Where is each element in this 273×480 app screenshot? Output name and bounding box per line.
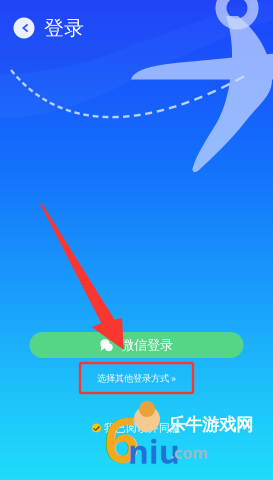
staticText: 登录 — [44, 16, 84, 40]
staticText: 微信登录 — [121, 337, 173, 353]
button[interactable]: 选择其他登录方式 » — [80, 363, 193, 393]
staticText: 我已阅读并同意 — [104, 421, 181, 434]
staticText: 6 — [104, 398, 139, 479]
staticText: .com — [170, 442, 208, 463]
button[interactable]: 我已阅读并同意 — [92, 421, 181, 435]
staticText: 选择其他登录方式 » — [97, 372, 176, 384]
button[interactable]: 微信登录 — [29, 332, 243, 358]
staticText: niu — [128, 430, 180, 472]
staticText: 乐牛游戏网 — [168, 414, 253, 435]
button[interactable]: Back — [11, 15, 37, 41]
